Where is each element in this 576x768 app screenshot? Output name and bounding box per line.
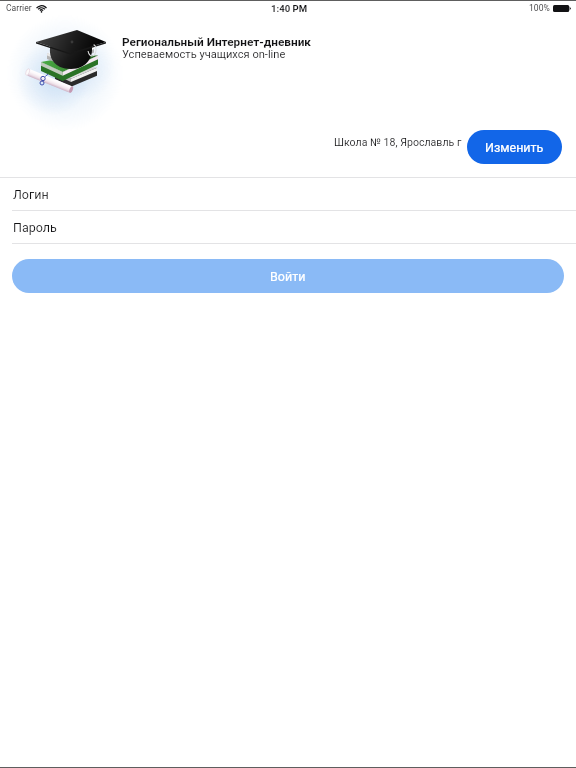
- other: Graduation cap on books logo: [13, 19, 121, 101]
- staticText: Войти: [270, 269, 306, 284]
- other: Wi-Fi signal: [37, 5, 46, 12]
- staticText: Изменить: [485, 140, 544, 155]
- staticText: Carrier: [6, 3, 32, 13]
- button[interactable]: Логин: [0, 178, 576, 210]
- staticText: Пароль: [13, 220, 57, 235]
- button[interactable]: Войти: [12, 259, 564, 293]
- staticText: Логин: [13, 187, 49, 202]
- staticText: 1:40 PM: [271, 3, 308, 14]
- button[interactable]: Изменить: [467, 130, 562, 164]
- button[interactable]: Школа № 18, Ярославль г: [330, 125, 464, 159]
- staticText: Региональный Интернет-дневник: [122, 35, 311, 49]
- staticText: Школа № 18, Ярославль г: [334, 136, 462, 148]
- staticText: 100%: [529, 3, 550, 13]
- staticText: Успеваемость учащихся on-line: [122, 48, 286, 61]
- other: Battery full: [553, 5, 571, 12]
- button[interactable]: Пароль: [0, 211, 576, 243]
